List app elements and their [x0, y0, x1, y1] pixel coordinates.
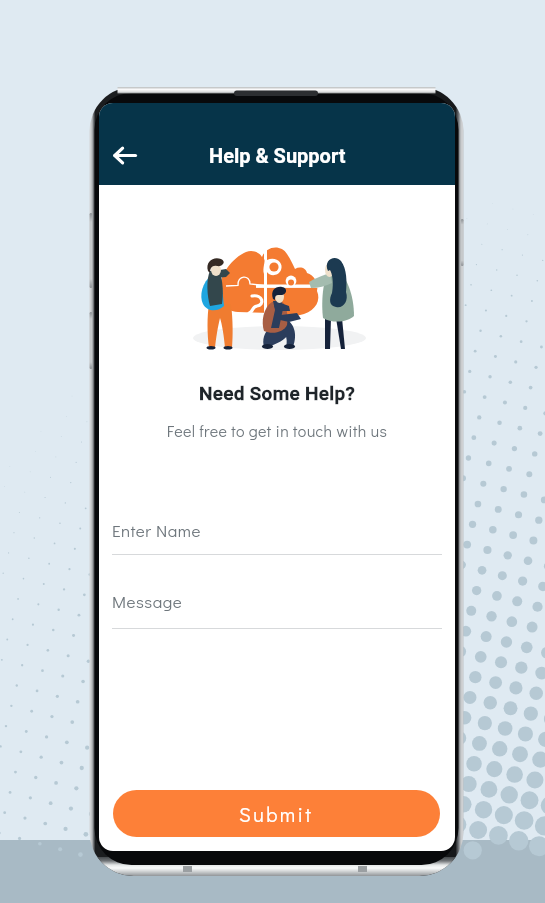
- staticText: Message: [112, 590, 183, 612]
- button[interactable]: Message: [112, 590, 442, 629]
- staticText: Need Some Help?: [99, 382, 455, 404]
- staticText: Enter: [112, 519, 152, 541]
- button[interactable]: Enter: [112, 519, 442, 555]
- staticText: Help & Support: [209, 144, 346, 167]
- button[interactable]: Submit: [113, 790, 440, 837]
- staticText: Submit: [239, 801, 314, 827]
- staticText: Feel free to get in touch with us: [99, 420, 455, 441]
- button[interactable]: Back: [102, 133, 146, 177]
- staticText: Name: [156, 519, 201, 541]
